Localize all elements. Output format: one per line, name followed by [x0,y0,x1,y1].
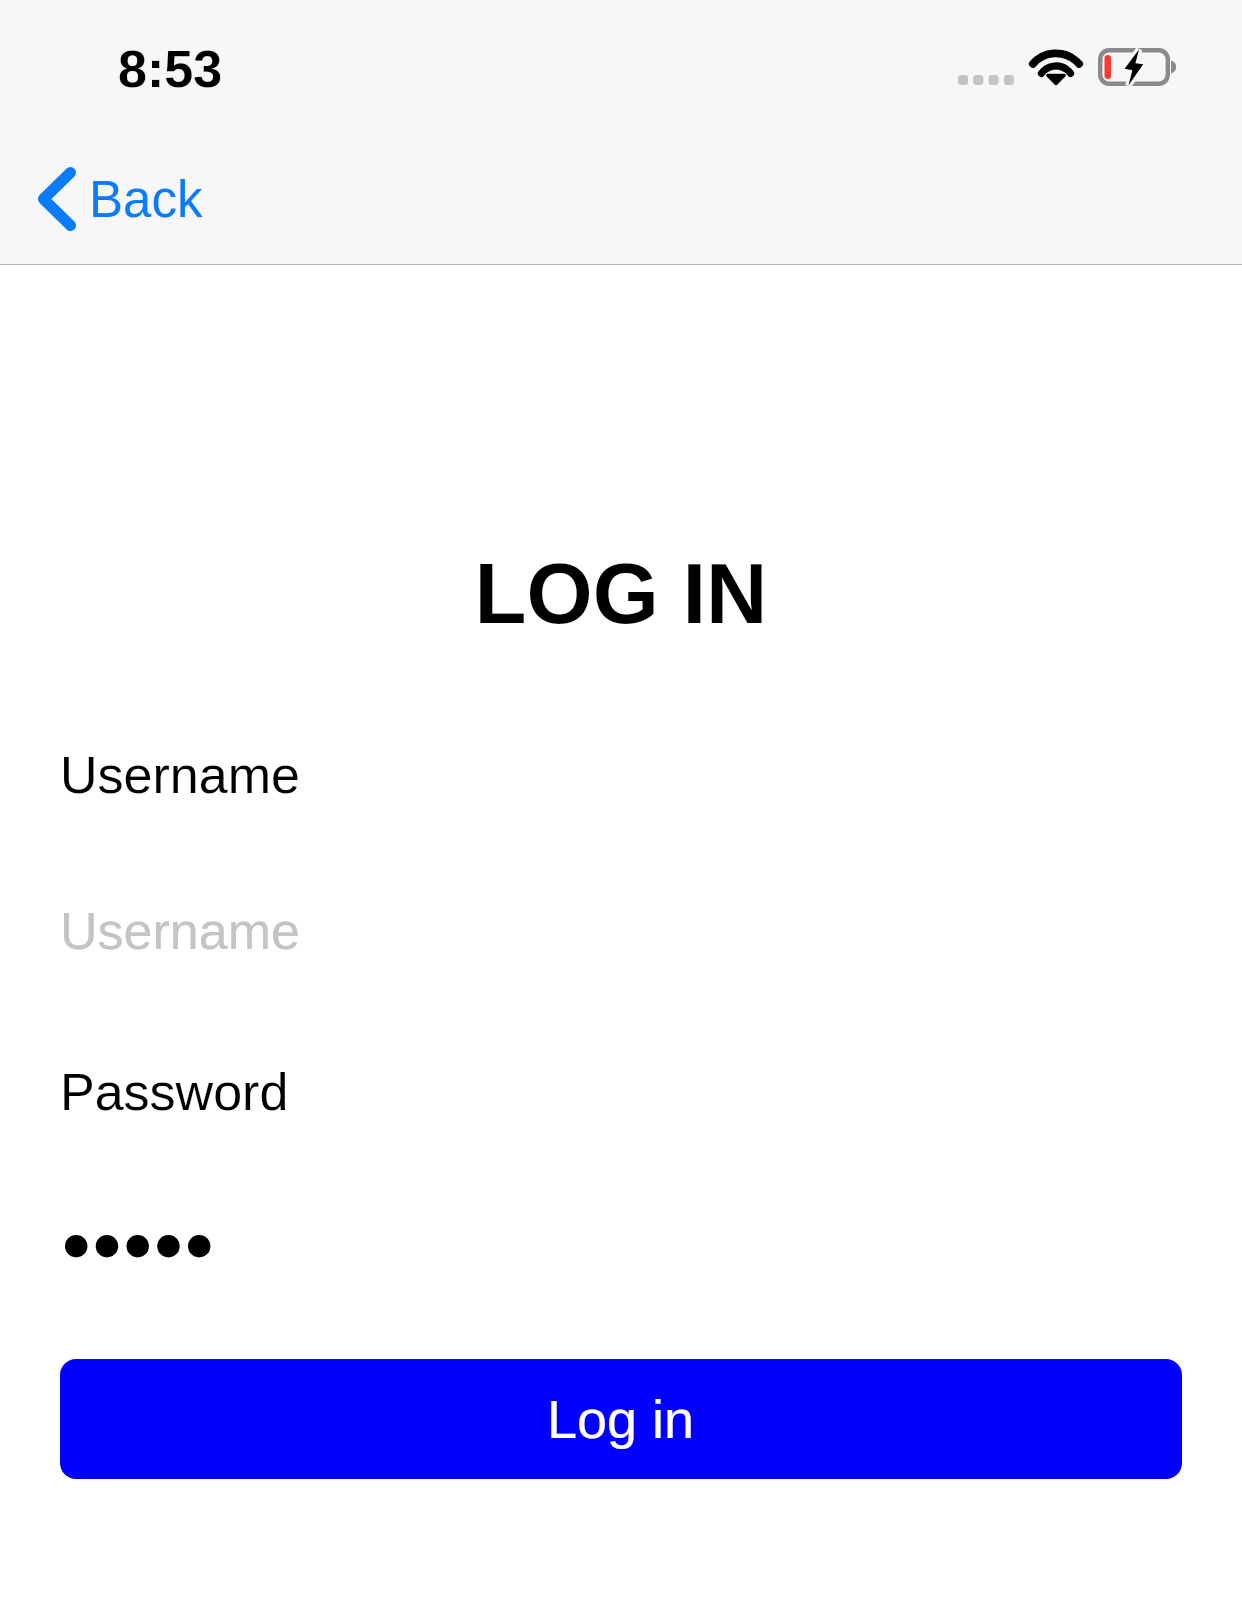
other: Cellular signal [958,75,1014,85]
staticText: Username [60,902,300,960]
staticText: 8:53 [118,40,223,98]
other: Wi-Fi [1031,47,1081,87]
staticText: LOG IN [0,546,1242,641]
button[interactable] [0,1205,1242,1287]
other: Battery charging [1097,47,1179,87]
staticText: Back [89,171,203,228]
other: Back [38,167,76,231]
button[interactable]: Username [0,884,1242,966]
button[interactable]: Log in [60,1359,1182,1479]
staticText: Password [60,1063,289,1121]
button[interactable]: Back [0,147,225,251]
staticText: Log in [547,1389,695,1449]
staticText: Username [60,746,300,804]
